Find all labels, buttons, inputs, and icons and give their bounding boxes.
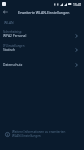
staticText: Datenschutz <box>3 62 23 66</box>
staticText: 15:41 <box>73 2 82 6</box>
staticText: WLAN-Einstellungen <box>12 134 41 138</box>
staticText: Statisch <box>3 47 16 51</box>
staticText: IP-Einstellungen <box>3 44 25 48</box>
staticText: WLAN <box>4 20 14 25</box>
staticText: WPA2 Personal <box>3 33 27 37</box>
button[interactable]: Datenschutz <box>0 59 84 70</box>
staticText: Weitere Informationen zu erweiterten <box>12 130 66 134</box>
button[interactable]: Sicherheitstyp <box>0 28 84 41</box>
staticText: Erweiterte WLAN-Einstellungen <box>18 10 70 15</box>
button[interactable]: IP-Einstellungen <box>0 42 84 55</box>
staticText: Sicherheitstyp <box>3 30 22 34</box>
button[interactable]: Back <box>0 7 10 17</box>
